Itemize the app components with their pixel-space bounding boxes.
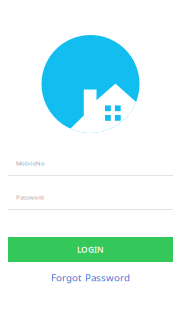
button[interactable]: LOGIN: [8, 237, 173, 262]
staticText: LOGIN: [77, 244, 104, 255]
staticText: MobileNo: [16, 159, 45, 167]
button[interactable]: Forgot Password: [8, 271, 173, 284]
staticText: Forgot Password: [51, 271, 130, 284]
staticText: Password: [16, 193, 44, 201]
